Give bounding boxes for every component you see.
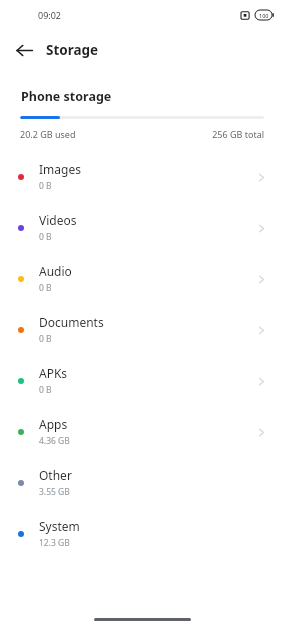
staticText: 0 B (39, 231, 52, 243)
staticText: Images (39, 161, 81, 177)
staticText: 3.55 GB (39, 486, 70, 498)
staticText: 20.2 GB used (20, 128, 76, 140)
button[interactable]: Videos (0, 202, 284, 253)
staticText: Audio (39, 263, 72, 279)
staticText: Phone storage (21, 88, 112, 105)
button[interactable]: System (0, 508, 284, 559)
staticText: 100 (259, 12, 269, 19)
button[interactable]: Other (0, 457, 284, 508)
staticText: 0 B (39, 282, 52, 294)
button[interactable]: Images (0, 151, 284, 202)
staticText: APKs (39, 365, 68, 381)
staticText: System (39, 518, 80, 534)
staticText: 12.3 GB (39, 537, 70, 549)
button[interactable]: Audio (0, 253, 284, 304)
staticText: Videos (39, 212, 77, 228)
staticText: 0 B (39, 384, 52, 396)
button[interactable]: Apps (0, 406, 284, 457)
staticText: Storage (46, 41, 99, 59)
staticText: Other (39, 467, 72, 483)
staticText: 09:02 (38, 9, 62, 21)
button[interactable]: Documents (0, 304, 284, 355)
staticText: Apps (39, 416, 68, 432)
staticText: 256 GB total (212, 128, 264, 140)
staticText: 4.36 GB (39, 435, 70, 447)
staticText: 0 B (39, 180, 52, 192)
button[interactable]: Back (8, 34, 40, 66)
staticText: 0 B (39, 333, 52, 345)
staticText: Documents (39, 314, 104, 330)
button[interactable]: APKs (0, 355, 284, 406)
